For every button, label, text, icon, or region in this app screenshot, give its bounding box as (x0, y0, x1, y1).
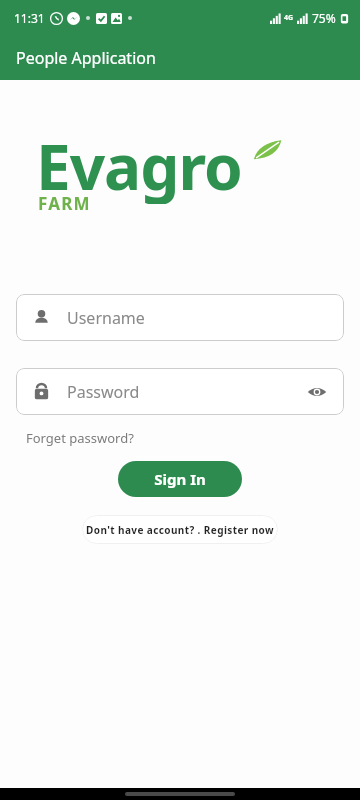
button[interactable]: Show password (306, 381, 328, 403)
button[interactable]: Sign In (118, 461, 242, 497)
staticText: Don't have account? . Register now (86, 523, 274, 537)
staticText: Password (67, 381, 140, 403)
button[interactable]: Password (16, 368, 344, 415)
button[interactable]: Forget password? (26, 429, 134, 447)
staticText: Sign In (154, 469, 206, 489)
button[interactable]: Username (16, 294, 344, 341)
staticText: 11:31 (14, 10, 45, 26)
button[interactable]: Don't have account? . Register now (82, 515, 278, 544)
staticText: FARM (38, 192, 91, 215)
staticText: People Application (16, 47, 156, 69)
staticText: Evagro (36, 124, 242, 204)
staticText: Forget password? (26, 429, 134, 447)
staticText: 4G (284, 13, 294, 23)
staticText: Username (67, 307, 145, 329)
staticText: 75% (312, 10, 336, 26)
